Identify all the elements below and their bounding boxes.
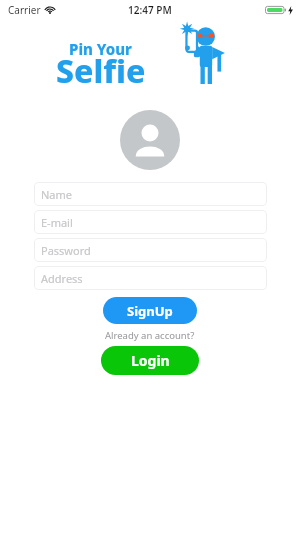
staticText: Selfie <box>56 49 146 93</box>
button[interactable]: Profile photo <box>120 110 180 170</box>
button[interactable]: Password <box>34 238 267 262</box>
button[interactable]: E-mail <box>34 210 267 234</box>
button[interactable]: SignUp <box>103 297 197 324</box>
staticText: SignUp <box>127 302 173 320</box>
staticText: Login <box>131 351 170 370</box>
staticText: 12:47 PM <box>128 3 172 17</box>
staticText: E-mail <box>41 215 73 230</box>
staticText: Password <box>41 243 91 258</box>
staticText: Already an account? <box>105 329 195 342</box>
button[interactable]: Already an account? <box>101 328 199 343</box>
staticText: Name <box>41 187 73 202</box>
staticText: Pin Your <box>69 39 132 59</box>
button[interactable]: Name <box>34 182 267 206</box>
staticText: Carrier <box>8 3 41 17</box>
button[interactable]: Address <box>34 266 267 290</box>
staticText: Address <box>41 271 83 286</box>
button[interactable]: Login <box>101 346 199 375</box>
